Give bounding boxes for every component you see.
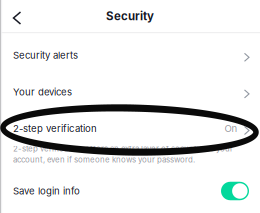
staticText: 2-step verification offers an extra laye…: [13, 144, 233, 153]
staticText: 2-step verification: [13, 123, 97, 134]
staticText: Security: [106, 9, 154, 23]
staticText: Your devices: [13, 86, 72, 98]
button[interactable]: Security alerts: [0, 37, 260, 74]
staticText: Security alerts: [13, 49, 78, 61]
button[interactable]: Your devices: [0, 74, 260, 110]
staticText: On: [224, 123, 237, 134]
staticText: account, even if someone knows your pass…: [13, 155, 195, 164]
staticText: Save login info: [13, 185, 80, 197]
button[interactable]: Back: [0, 0, 31, 32]
button[interactable]: 2-step verification: [0, 110, 260, 147]
button[interactable]: Save login info: [0, 174, 260, 208]
